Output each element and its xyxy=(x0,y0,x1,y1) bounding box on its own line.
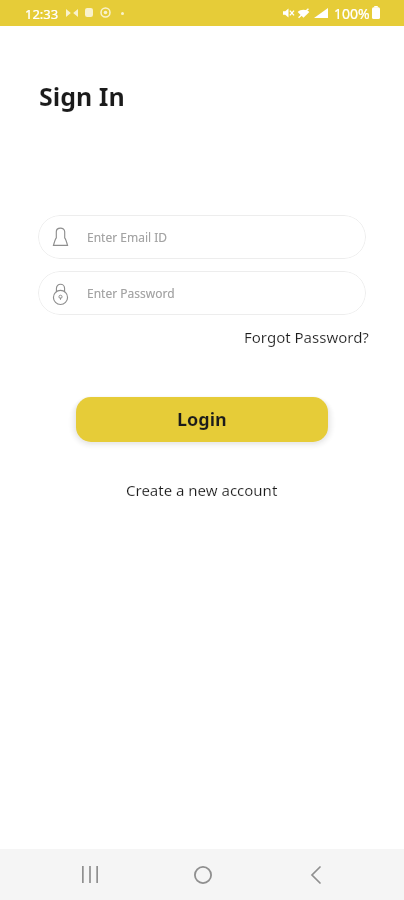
staticText: Enter Password xyxy=(87,285,175,301)
staticText: Forgot Password? xyxy=(244,327,369,347)
button[interactable]: Back xyxy=(282,849,350,900)
button[interactable]: Recent apps xyxy=(56,849,124,900)
button[interactable]: Enter Password xyxy=(38,271,366,315)
staticText: Login xyxy=(177,407,227,432)
staticText: Sign In xyxy=(39,79,125,113)
button[interactable]: Forgot Password? xyxy=(232,319,381,355)
button[interactable]: Home xyxy=(169,849,237,900)
button[interactable]: Enter Email ID xyxy=(38,215,366,259)
staticText: Create a new account xyxy=(126,480,278,500)
staticText: 12:33 xyxy=(25,5,59,23)
button[interactable]: Login xyxy=(76,397,328,442)
button[interactable]: Create a new account xyxy=(112,472,292,508)
staticText: 100% xyxy=(334,4,370,23)
staticText: Enter Email ID xyxy=(87,229,168,245)
